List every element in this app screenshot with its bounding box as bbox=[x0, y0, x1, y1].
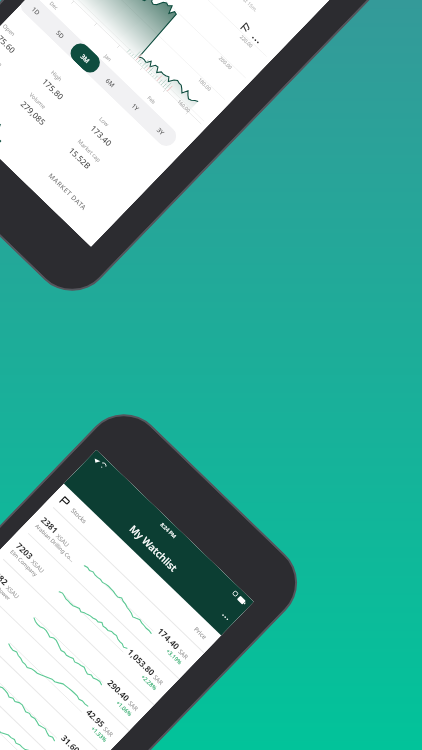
staticText: 173.40 bbox=[88, 122, 115, 148]
staticText: Prev close bbox=[0, 44, 4, 69]
staticText: 3M bbox=[78, 52, 92, 65]
staticText: 6M bbox=[104, 76, 117, 90]
staticText: 180.00 bbox=[196, 77, 213, 93]
staticText: Jan bbox=[103, 53, 113, 63]
staticText: 200.00 bbox=[217, 55, 234, 71]
staticText: 1D bbox=[30, 5, 42, 17]
staticText: 5D bbox=[54, 28, 67, 41]
staticText: KEY DATA bbox=[0, 101, 5, 131]
button[interactable]: 2082 bbox=[0, 552, 154, 730]
staticText: 15.52B bbox=[67, 145, 94, 171]
button[interactable]: MARKET DATA bbox=[12, 150, 110, 247]
button[interactable]: 1211 bbox=[0, 630, 79, 750]
staticText: 1Y bbox=[130, 101, 142, 113]
button[interactable]: 5D bbox=[42, 16, 79, 52]
staticText: Market cap bbox=[76, 137, 103, 164]
button[interactable]: 6M bbox=[92, 64, 129, 101]
button[interactable]: 1Y bbox=[117, 88, 154, 125]
staticText: Stocks bbox=[70, 506, 89, 525]
button[interactable]: 3Y bbox=[142, 112, 179, 149]
staticText: MARKET DATA bbox=[47, 171, 89, 212]
staticText: 174.40 bbox=[155, 625, 182, 652]
staticText: Price bbox=[193, 625, 209, 641]
staticText: SAR bbox=[176, 648, 190, 661]
staticText: SAR bbox=[126, 699, 140, 713]
staticText: 42.95 bbox=[84, 706, 107, 730]
staticText: Feb bbox=[146, 95, 157, 106]
staticText: +3.19% bbox=[164, 647, 184, 667]
staticText: 2381 bbox=[39, 514, 61, 536]
staticText: +2.28% bbox=[139, 673, 159, 693]
button[interactable]: 2381 bbox=[22, 501, 204, 679]
button[interactable]: More options bbox=[218, 610, 232, 624]
staticText: XSAU bbox=[5, 583, 22, 600]
staticText: SAR bbox=[151, 673, 165, 687]
staticText: 175.60 bbox=[0, 29, 18, 55]
staticText: 290.40 bbox=[105, 677, 132, 704]
staticText: Volume bbox=[28, 91, 47, 111]
button[interactable]: 1D bbox=[18, 0, 54, 29]
button[interactable]: 3M bbox=[66, 39, 104, 77]
staticText: 7203 bbox=[14, 540, 36, 562]
staticText: XSAU bbox=[30, 557, 47, 574]
staticText: +1.33% bbox=[89, 725, 109, 744]
staticText: Data is delayed by at least 15m. bbox=[201, 0, 259, 14]
staticText: Low bbox=[97, 115, 111, 129]
button[interactable]: More options bbox=[249, 33, 262, 46]
staticText: 2082 bbox=[0, 566, 11, 588]
button[interactable]: 2010 bbox=[0, 604, 104, 750]
staticText: XSAU bbox=[55, 532, 72, 548]
staticText: 175.80 bbox=[40, 76, 66, 102]
staticText: Elm Company bbox=[9, 548, 39, 577]
staticText: 1,053.80 bbox=[125, 646, 157, 678]
staticText: SAR bbox=[101, 725, 115, 739]
staticText: 220.00 bbox=[238, 34, 254, 50]
staticText: ACWA Power bbox=[0, 574, 13, 602]
staticText: Open bbox=[1, 22, 17, 38]
staticText: 3Y bbox=[155, 125, 167, 137]
staticText: Dec bbox=[48, 0, 59, 11]
button[interactable]: Share bbox=[238, 21, 253, 35]
staticText: 31.60 bbox=[59, 732, 82, 750]
staticText: My Watchlist bbox=[127, 522, 181, 575]
button[interactable]: 7203 bbox=[0, 527, 179, 705]
staticText: Arabian Drilling Co… bbox=[34, 522, 76, 563]
staticText: 8:24 PM bbox=[159, 521, 178, 539]
button[interactable]: KEY DATA bbox=[0, 75, 31, 171]
staticText: 279,085 bbox=[18, 98, 48, 128]
button[interactable]: 1120 bbox=[0, 578, 129, 750]
staticText: 160.00 bbox=[175, 98, 192, 114]
staticText: +1.06% bbox=[114, 699, 134, 718]
staticText: High bbox=[49, 69, 64, 83]
